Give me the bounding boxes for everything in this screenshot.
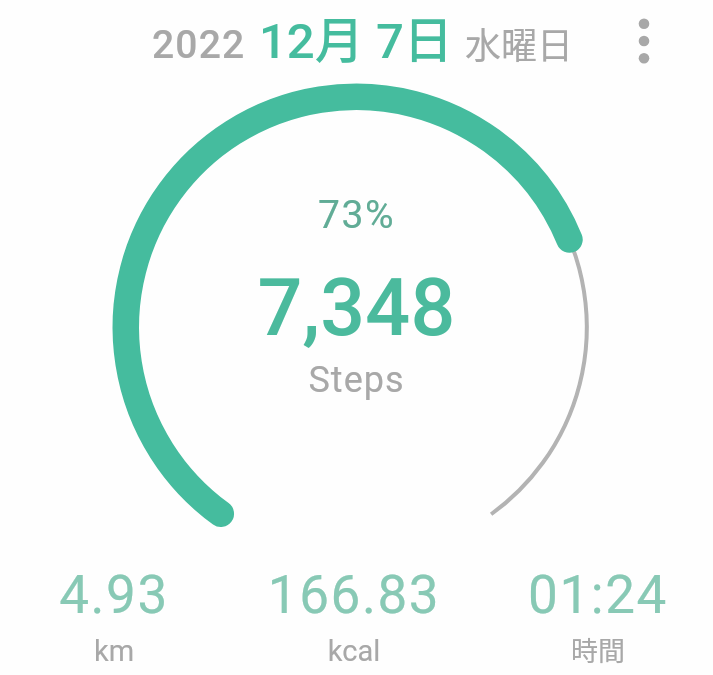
staticText: Steps [0,359,713,401]
staticText: 166.83 [239,564,469,626]
staticText: 水曜日 [465,17,574,69]
button[interactable]: More options [615,12,672,69]
staticText: 7,348 [0,262,713,355]
button[interactable]: 01:24 [483,556,713,675]
staticText: 12月 7日 [259,1,453,72]
staticText: 4.93 [0,564,229,626]
staticText: 2022 [152,22,246,68]
staticText: 時間 [483,630,713,669]
button[interactable]: 4.93 [0,556,229,675]
staticText: km [0,634,229,668]
staticText: 01:24 [483,564,713,626]
staticText: 73% [0,192,713,238]
staticText: kcal [239,634,469,668]
button[interactable]: 166.83 [239,556,469,675]
